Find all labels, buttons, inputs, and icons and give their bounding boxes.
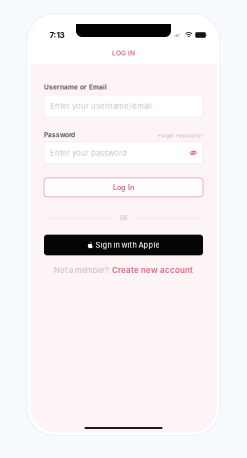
staticText: Enter your username/email xyxy=(50,101,152,111)
staticText: Create new account xyxy=(112,265,193,275)
staticText: Sign in with Apple xyxy=(95,241,159,249)
staticText: OR xyxy=(119,215,127,222)
staticText: Forgot Password? xyxy=(158,132,203,139)
staticText: Username or Email xyxy=(44,83,107,91)
staticText: Password xyxy=(44,131,75,139)
staticText: Log In xyxy=(113,183,134,192)
staticText: Enter your password xyxy=(50,148,127,158)
button[interactable]: Log In xyxy=(44,178,203,197)
staticText: 7:13 xyxy=(49,30,64,40)
button[interactable]: Not a member? xyxy=(44,265,203,275)
staticText: Not a member? xyxy=(54,266,109,275)
button[interactable]: Sign in with Apple xyxy=(44,235,203,255)
staticText: LOG IN xyxy=(112,49,135,57)
